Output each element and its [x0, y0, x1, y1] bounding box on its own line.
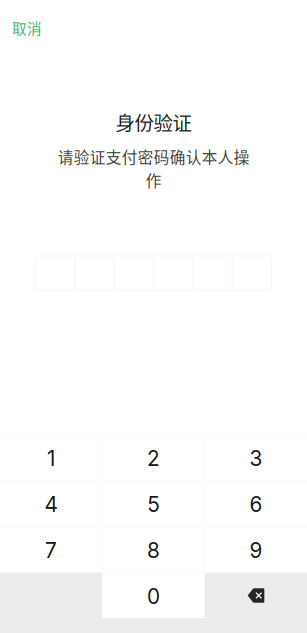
staticText: 身份验证 — [115, 108, 191, 136]
button[interactable]: 8 — [103, 527, 204, 572]
button[interactable]: 1 — [0, 435, 102, 480]
button[interactable]: 3 — [205, 435, 307, 480]
staticText: 7 — [45, 538, 57, 563]
button[interactable]: 2 — [103, 435, 204, 480]
button[interactable]: 9 — [205, 527, 307, 572]
button[interactable]: 7 — [0, 527, 102, 572]
staticText: 5 — [147, 492, 159, 517]
button[interactable]: 取消 — [0, 8, 64, 48]
staticText: 8 — [147, 538, 160, 563]
button[interactable]: 4 — [0, 481, 102, 526]
staticText: 9 — [250, 538, 263, 563]
staticText: 1 — [47, 446, 55, 471]
button[interactable]: 5 — [103, 481, 204, 526]
staticText: 6 — [250, 492, 263, 517]
staticText: 2 — [147, 446, 160, 471]
staticText: 3 — [250, 446, 263, 471]
staticText: 请验证支付密码确认本人操作 — [57, 145, 249, 191]
button[interactable]: 0 — [102, 573, 205, 618]
staticText: 4 — [44, 492, 57, 517]
button[interactable]: Delete — [205, 573, 307, 618]
staticText: 0 — [147, 584, 160, 609]
staticText: 取消 — [12, 17, 42, 38]
button[interactable]: 6 — [205, 481, 307, 526]
